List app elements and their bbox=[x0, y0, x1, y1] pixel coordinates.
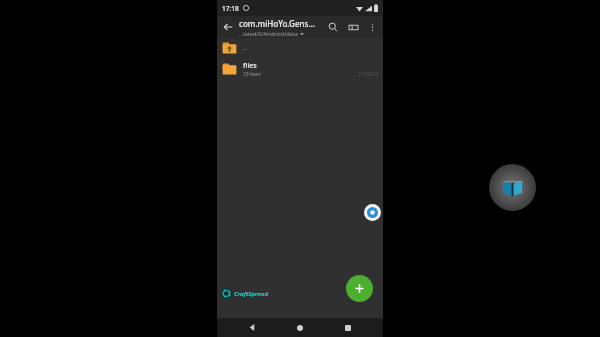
button[interactable]: .. bbox=[217, 38, 383, 58]
staticText: 17:18 bbox=[222, 4, 239, 13]
button[interactable]: Back bbox=[217, 16, 239, 38]
staticText: 21:08:03 bbox=[358, 71, 378, 78]
staticText: …lated/0/Android/data bbox=[239, 30, 298, 37]
button[interactable]: Search bbox=[323, 17, 343, 37]
staticText: .. bbox=[243, 43, 247, 53]
button[interactable]: Overlay shortcut bbox=[489, 164, 536, 211]
button[interactable]: com.miHoYo.Gens… bbox=[239, 18, 323, 37]
button[interactable]: More options bbox=[363, 18, 381, 36]
button[interactable]: Recent apps bbox=[335, 318, 361, 337]
button[interactable]: files bbox=[217, 58, 383, 80]
button[interactable]: View mode bbox=[343, 17, 363, 37]
staticText: com.miHoYo.Gens… bbox=[239, 18, 315, 29]
button[interactable]: Add bbox=[346, 275, 373, 302]
staticText: CraftSpread bbox=[234, 290, 268, 298]
staticText: files bbox=[243, 61, 257, 71]
button[interactable]: Back bbox=[239, 318, 265, 337]
button[interactable]: Home bbox=[287, 318, 313, 337]
button[interactable]: Floating assistant bbox=[364, 204, 381, 221]
staticText: 10 item bbox=[243, 71, 261, 78]
